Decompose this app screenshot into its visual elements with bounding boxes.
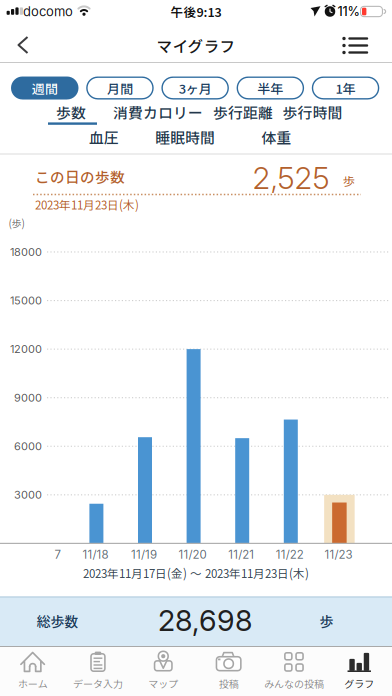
button[interactable]: ホーム	[0, 647, 65, 696]
button[interactable]: マップ	[131, 647, 196, 696]
button[interactable]: 半年	[237, 76, 304, 99]
button[interactable]: 歩数	[52, 98, 90, 126]
staticText: 睡眠時間	[155, 126, 215, 148]
staticText: 午後9:13	[170, 2, 221, 21]
staticText: ホーム	[18, 676, 48, 691]
staticText: 15000	[10, 294, 42, 307]
staticText: みんなの投稿	[264, 676, 324, 691]
staticText: 11%	[337, 4, 359, 19]
staticText: 11/22	[276, 547, 304, 561]
staticText: 歩	[342, 171, 355, 190]
button[interactable]: 歩行距離	[209, 98, 277, 126]
staticText: 11/21	[228, 547, 254, 561]
staticText: グラフ	[344, 676, 374, 691]
button[interactable]: グラフ	[327, 647, 392, 696]
button[interactable]: 1年	[312, 76, 379, 99]
staticText: 歩行距離	[213, 101, 273, 123]
staticText: 月間	[107, 79, 133, 97]
staticText: 週間	[32, 79, 58, 97]
button[interactable]: 消費カロリー	[109, 98, 207, 126]
staticText: docomo	[23, 4, 73, 19]
staticText: 11/19	[131, 547, 157, 561]
staticText: 2023年11月23日(木)	[35, 196, 139, 213]
staticText: 半年	[257, 79, 283, 97]
button[interactable]: 睡眠時間	[151, 123, 219, 151]
staticText: 血圧	[89, 126, 119, 148]
button[interactable]: 3ヶ月	[161, 76, 229, 99]
staticText: 歩	[319, 611, 333, 631]
staticText: 1年	[336, 79, 356, 97]
button[interactable]: データ入力	[65, 647, 131, 696]
staticText: (歩)	[8, 216, 24, 230]
staticText: 18000	[10, 245, 42, 259]
button[interactable]: 体重	[257, 123, 295, 151]
button[interactable]: 週間	[11, 76, 78, 99]
staticText: 12000	[10, 342, 42, 356]
button[interactable]: 投稿	[196, 647, 261, 696]
button[interactable]: リスト	[336, 28, 376, 62]
staticText: マップ	[148, 676, 178, 691]
staticText: 6000	[14, 440, 42, 453]
staticText: 体重	[261, 126, 291, 148]
button[interactable]: 血圧	[85, 123, 123, 151]
staticText: この日の歩数	[35, 166, 125, 187]
staticText: 歩数	[56, 101, 86, 123]
staticText: 11/23	[324, 547, 352, 561]
button[interactable]: 月間	[86, 76, 154, 99]
staticText: データ入力	[73, 676, 123, 691]
staticText: 消費カロリー	[113, 101, 203, 123]
staticText: 2,525	[252, 160, 329, 196]
button[interactable]: 歩行時間	[278, 98, 346, 126]
staticText: 3ヶ月	[179, 79, 212, 97]
staticText: 7	[54, 547, 61, 561]
staticText: 11/20	[179, 547, 207, 561]
staticText: 9000	[14, 391, 42, 404]
staticText: 歩行時間	[282, 101, 342, 123]
staticText: 投稿	[219, 676, 239, 691]
staticText: マイグラフ	[156, 34, 235, 57]
staticText: 28,698	[158, 603, 252, 638]
staticText: 総歩数	[36, 611, 78, 631]
button[interactable]: 戻る	[4, 28, 40, 62]
button[interactable]: みんなの投稿	[261, 647, 327, 696]
staticText: 11/18	[82, 547, 108, 561]
staticText: 3000	[14, 488, 42, 501]
staticText: 2023年11月17日(金) ～ 2023年11月23日(木)	[83, 565, 309, 581]
